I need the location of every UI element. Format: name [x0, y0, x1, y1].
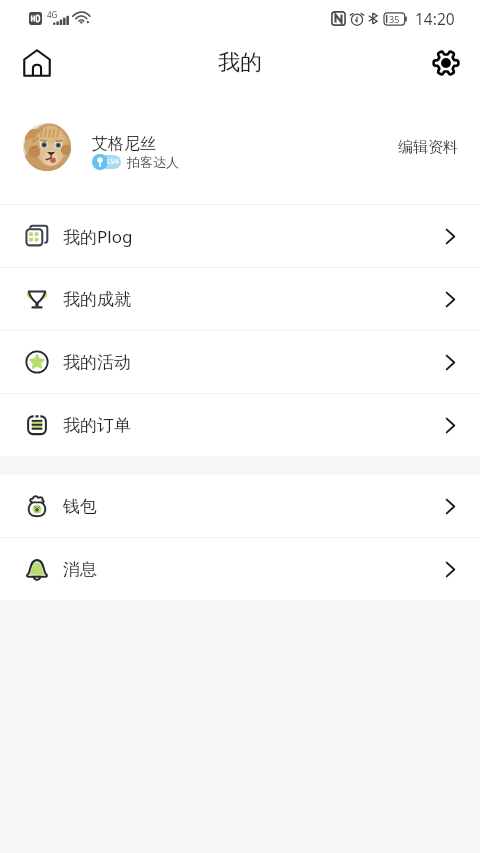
- button[interactable]: 我的成就: [0, 268, 480, 330]
- staticText: 编辑资料: [398, 138, 458, 157]
- button[interactable]: 我的活动: [0, 331, 480, 393]
- staticText: 钱包: [63, 496, 97, 517]
- button[interactable]: 消息: [0, 538, 480, 600]
- button[interactable]: Settings: [422, 39, 470, 87]
- staticText: 我的订单: [63, 415, 131, 436]
- button[interactable]: Home: [13, 39, 61, 87]
- staticText: 35: [389, 13, 400, 25]
- staticText: 我的活动: [63, 352, 131, 373]
- staticText: 拍客达人: [127, 154, 179, 170]
- staticText: 艾格尼丝: [92, 134, 156, 154]
- staticText: LV4: [107, 157, 119, 167]
- button[interactable]: 我的Plog: [0, 205, 480, 267]
- button[interactable]: 钱包: [0, 475, 480, 537]
- button[interactable]: 我的订单: [0, 394, 480, 456]
- staticText: 我的成就: [63, 289, 131, 310]
- staticText: 我的: [218, 49, 262, 77]
- staticText: 14:20: [415, 8, 455, 29]
- button[interactable]: 编辑资料: [388, 130, 468, 165]
- staticText: 我的Plog: [63, 225, 133, 248]
- staticText: 消息: [63, 559, 97, 580]
- staticText: 4G: [47, 9, 58, 20]
